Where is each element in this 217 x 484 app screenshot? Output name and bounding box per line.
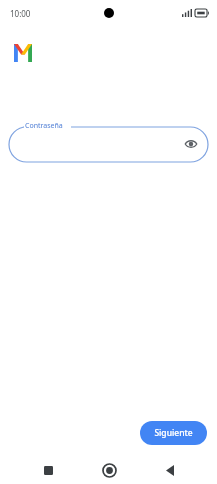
staticText: Contraseña [25,121,63,131]
button[interactable]: Recientes [34,456,62,484]
staticText: Siguiente [154,427,193,439]
button[interactable]: Atrás [156,456,184,484]
button[interactable]: Siguiente [140,421,207,445]
staticText: 10:00 [10,8,31,19]
button[interactable]: Mostrar contraseña [182,135,200,153]
button[interactable]: Inicio [95,456,123,484]
